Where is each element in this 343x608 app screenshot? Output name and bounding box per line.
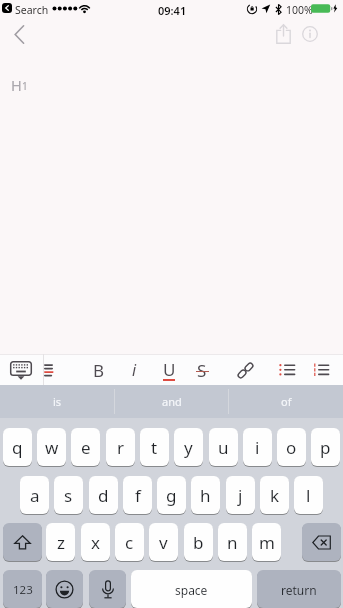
staticText: n — [227, 531, 238, 554]
staticText: p — [320, 436, 331, 459]
button[interactable]: p — [311, 428, 340, 467]
button[interactable]: t — [140, 428, 169, 467]
staticText: r — [117, 436, 125, 459]
button[interactable]: U — [159, 356, 179, 384]
button[interactable]: of — [229, 385, 343, 418]
button[interactable]: c — [115, 523, 144, 562]
staticText: t — [151, 436, 158, 459]
staticText: S — [197, 359, 207, 382]
staticText: s — [64, 484, 73, 507]
button[interactable]: a — [20, 476, 49, 515]
button[interactable]: f — [123, 476, 152, 515]
staticText: u — [218, 436, 229, 459]
staticText: f — [135, 484, 141, 507]
button[interactable]: S — [193, 356, 211, 384]
button[interactable]: and — [114, 385, 229, 418]
button[interactable]: n — [218, 523, 247, 562]
staticText: Search — [15, 3, 49, 17]
staticText: of — [281, 394, 292, 409]
staticText: 09:41 — [158, 3, 187, 18]
button[interactable]: z — [46, 523, 75, 562]
staticText: c — [125, 531, 134, 554]
staticText: z — [57, 531, 65, 554]
staticText: is — [53, 394, 62, 409]
staticText: B — [93, 359, 105, 382]
button[interactable]: s — [54, 476, 83, 515]
button[interactable]: space — [131, 570, 252, 608]
button[interactable]: d — [89, 476, 118, 515]
button[interactable]: l — [294, 476, 323, 515]
staticText: i — [255, 436, 260, 459]
staticText: b — [193, 531, 204, 554]
staticText: H — [11, 75, 22, 95]
button[interactable] — [269, 20, 297, 48]
button[interactable]: m — [252, 523, 281, 562]
button[interactable]: b — [184, 523, 213, 562]
staticText: y — [184, 436, 193, 459]
button[interactable]: i — [243, 428, 272, 467]
button[interactable]: q — [3, 428, 32, 467]
button[interactable]: x — [81, 523, 110, 562]
staticText: l — [306, 484, 311, 507]
button[interactable]: u — [209, 428, 238, 467]
button[interactable]: 123 — [3, 570, 42, 608]
button[interactable] — [310, 356, 333, 384]
button[interactable]: j — [226, 476, 255, 515]
staticText: m — [259, 531, 275, 554]
button[interactable]: y — [174, 428, 203, 467]
button[interactable] — [233, 356, 257, 384]
button[interactable]: g — [157, 476, 186, 515]
button[interactable] — [6, 356, 36, 384]
staticText: j — [238, 484, 243, 507]
staticText: k — [270, 484, 280, 507]
button[interactable] — [296, 20, 324, 48]
button[interactable]: B — [90, 356, 108, 384]
button[interactable] — [44, 356, 62, 384]
button[interactable] — [46, 570, 83, 608]
staticText: e — [81, 436, 91, 459]
staticText: 123 — [13, 582, 33, 598]
staticText: d — [98, 484, 109, 507]
button[interactable]: o — [277, 428, 306, 467]
staticText: return — [281, 582, 317, 598]
button[interactable]: h — [191, 476, 220, 515]
button[interactable] — [302, 523, 341, 562]
staticText: w — [45, 436, 59, 459]
staticText: and — [162, 394, 182, 409]
staticText: q — [12, 436, 23, 459]
staticText: 1 — [22, 79, 28, 93]
staticText: i — [132, 359, 137, 381]
button[interactable] — [276, 356, 299, 384]
staticText: o — [286, 436, 297, 459]
button[interactable] — [89, 570, 126, 608]
staticText: U — [163, 358, 176, 381]
button[interactable]: e — [71, 428, 100, 467]
button[interactable]: return — [257, 570, 341, 608]
button[interactable]: i — [125, 356, 143, 384]
button[interactable] — [3, 523, 42, 562]
button[interactable]: w — [37, 428, 66, 467]
staticText: x — [91, 531, 100, 554]
staticText: g — [166, 484, 177, 507]
button[interactable]: k — [260, 476, 289, 515]
staticText: space — [175, 582, 208, 598]
button[interactable]: is — [0, 385, 114, 418]
button[interactable]: v — [149, 523, 178, 562]
button[interactable] — [3, 18, 35, 50]
staticText: a — [30, 484, 40, 507]
staticText: 100% — [286, 3, 313, 17]
staticText: h — [200, 484, 211, 507]
staticText: v — [159, 531, 168, 554]
button[interactable]: r — [106, 428, 135, 467]
